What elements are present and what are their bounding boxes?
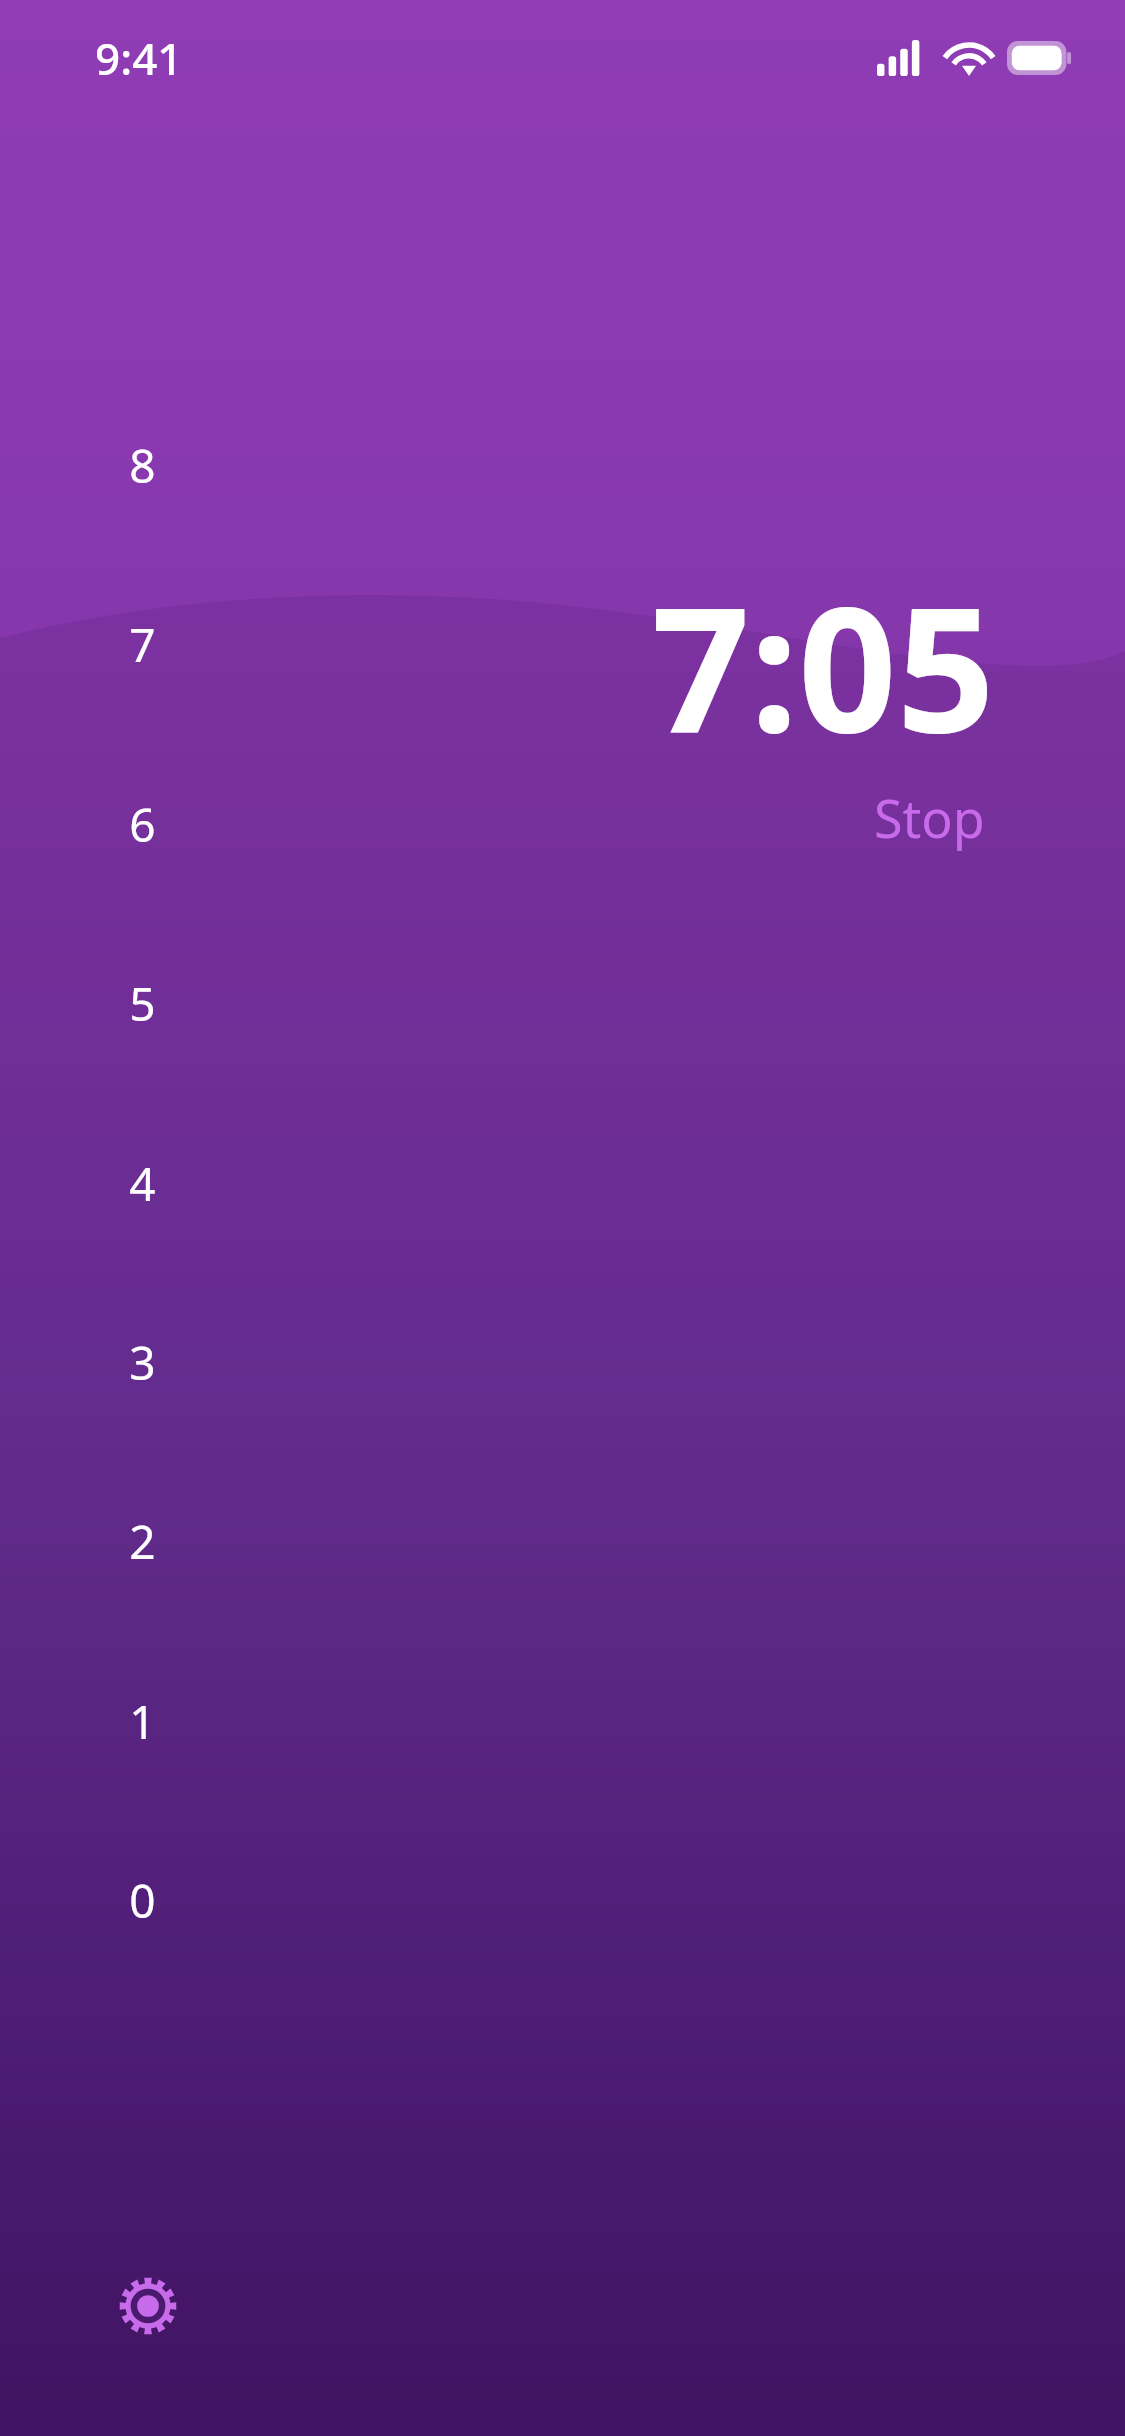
staticText: 7 <box>129 613 156 676</box>
staticText: 6 <box>129 793 156 856</box>
staticText: 0 <box>129 1869 156 1932</box>
staticText: Stop <box>874 782 985 853</box>
staticText: 7:05 <box>651 548 995 782</box>
staticText: 5 <box>129 972 156 1035</box>
staticText: 2 <box>129 1510 156 1573</box>
button[interactable]: Settings <box>108 2266 188 2346</box>
staticText: 4 <box>129 1152 156 1215</box>
button[interactable]: Stop <box>864 776 995 859</box>
staticText: 9:41 <box>95 28 183 88</box>
staticText: 8 <box>129 434 156 497</box>
staticText: 3 <box>129 1331 156 1394</box>
staticText: 1 <box>129 1690 156 1753</box>
